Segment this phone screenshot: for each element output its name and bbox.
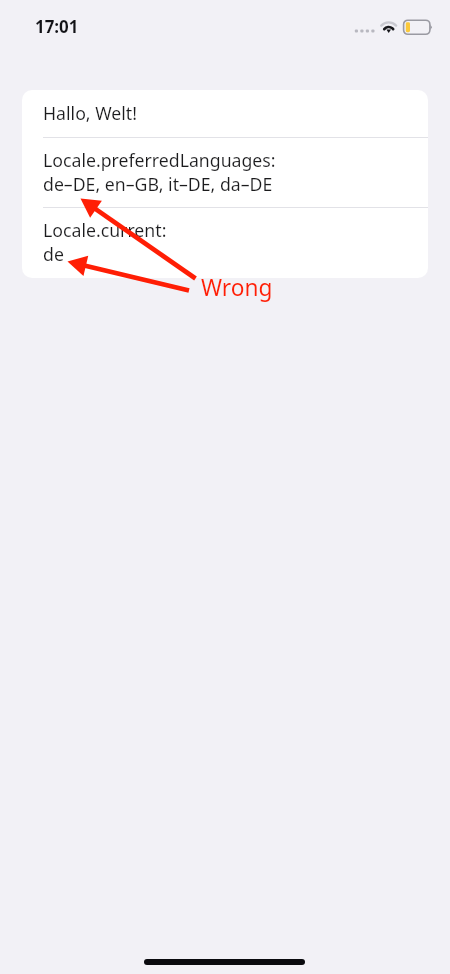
button[interactable]: Locale.current: de <box>22 207 428 278</box>
staticText: Wrong <box>201 272 273 303</box>
staticText: Locale.current: de <box>43 218 167 266</box>
staticText: Hallo, Welt! <box>43 101 137 125</box>
button[interactable]: Hallo, Welt! <box>22 90 428 137</box>
staticText: 17:01 <box>35 15 79 38</box>
other: Status icons <box>350 14 434 40</box>
staticText: Locale.preferredLanguages: de–DE, en–GB,… <box>43 148 276 196</box>
button[interactable]: Locale.preferredLanguages: de–DE, en–GB,… <box>22 137 428 207</box>
